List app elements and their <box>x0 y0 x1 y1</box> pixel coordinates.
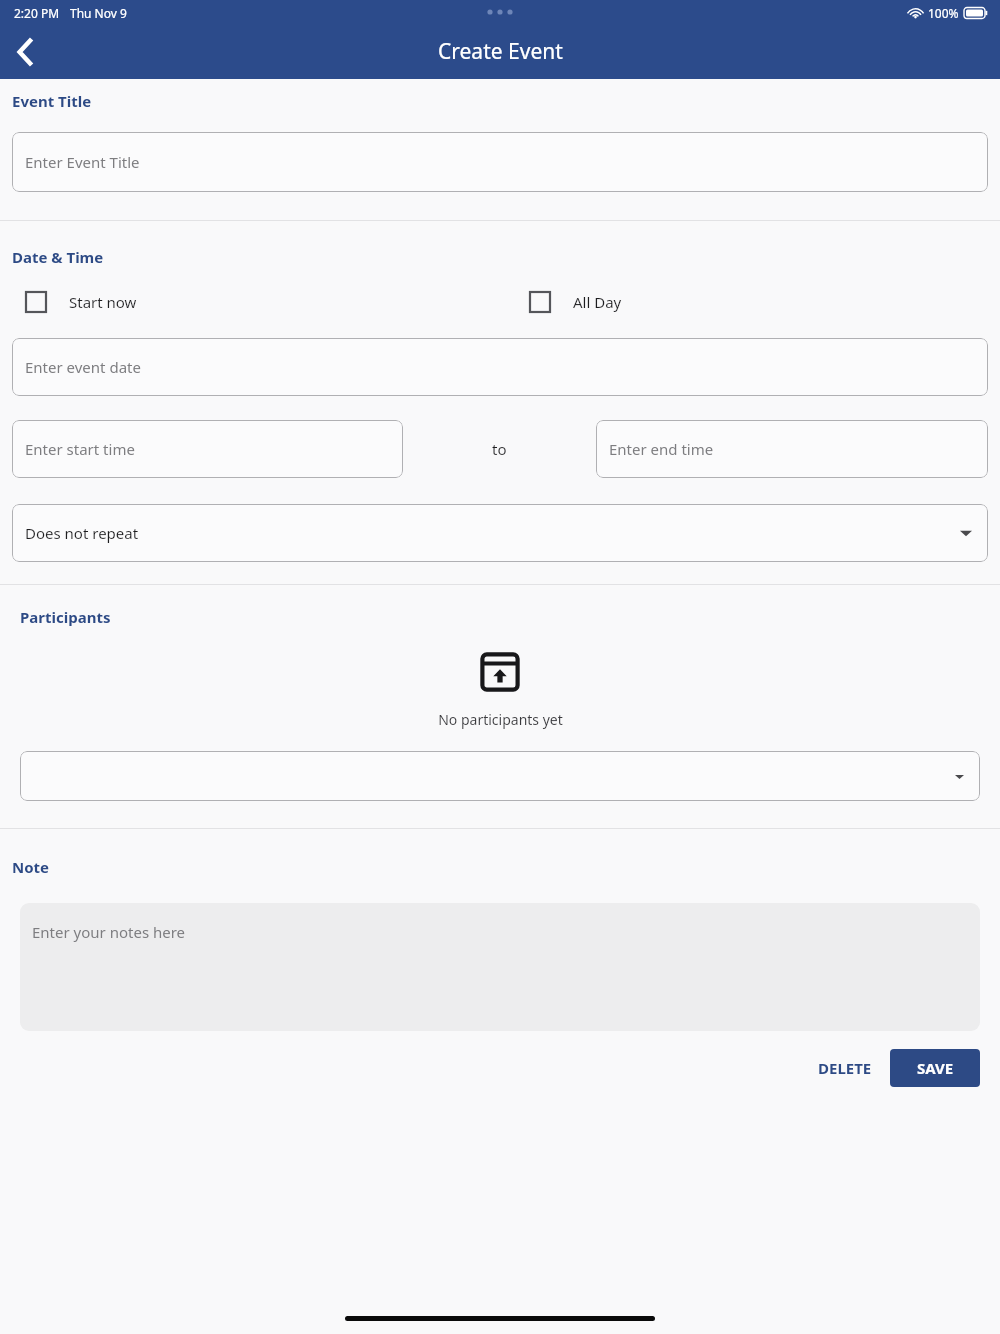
staticText: to <box>492 439 507 459</box>
staticText: Start now <box>69 292 137 312</box>
button[interactable]: Enter end time <box>596 420 988 478</box>
button[interactable]: DELETE <box>806 1048 884 1088</box>
staticText: Enter end time <box>609 439 714 459</box>
button[interactable]: Enter start time <box>12 420 403 478</box>
staticText: 100% <box>928 5 959 21</box>
staticText: SAVE <box>917 1058 954 1078</box>
staticText: DELETE <box>818 1058 872 1078</box>
button[interactable] <box>20 751 980 801</box>
button[interactable]: All Day <box>529 291 622 313</box>
staticText: Note <box>12 857 50 877</box>
staticText: All Day <box>573 292 622 312</box>
button[interactable]: Back <box>0 26 52 78</box>
staticText: Participants <box>20 607 111 627</box>
button[interactable]: Start now <box>25 291 137 313</box>
button[interactable]: Enter Event Title <box>12 132 988 192</box>
staticText: Create Event <box>438 37 563 66</box>
staticText: 2:20 PM <box>14 5 60 21</box>
button[interactable]: SAVE <box>890 1049 980 1087</box>
staticText: Does not repeat <box>25 523 139 543</box>
button[interactable]: Enter your notes here <box>20 903 980 1031</box>
staticText: Event Title <box>12 91 92 111</box>
staticText: Thu Nov 9 <box>70 5 127 21</box>
staticText: Enter your notes here <box>32 922 186 942</box>
button[interactable]: Does not repeat <box>12 504 988 562</box>
staticText: No participants yet <box>438 710 563 729</box>
staticText: Enter event date <box>25 357 141 377</box>
button[interactable]: Enter event date <box>12 338 988 396</box>
staticText: Date & Time <box>12 247 104 267</box>
staticText: Enter start time <box>25 439 135 459</box>
staticText: Enter Event Title <box>25 152 140 172</box>
